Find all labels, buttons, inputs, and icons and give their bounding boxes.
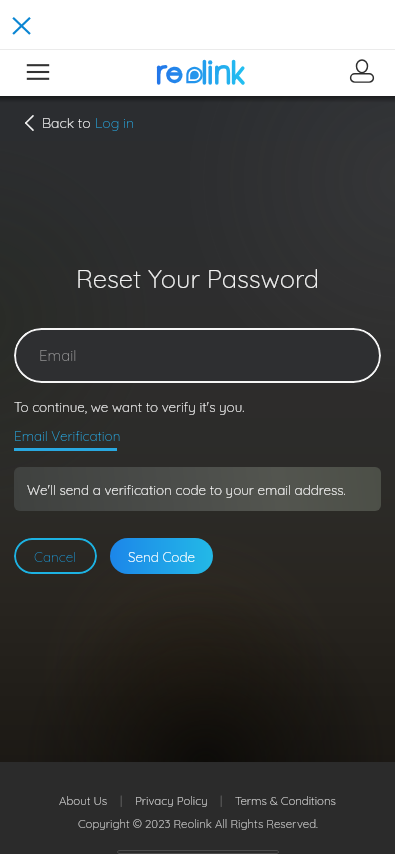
button[interactable]: About Us: [59, 793, 108, 807]
staticText: Send Code: [128, 548, 195, 565]
button[interactable]: Account: [344, 53, 380, 89]
button[interactable]: Terms & Conditions: [235, 793, 336, 807]
staticText: Email Verification: [14, 427, 121, 444]
staticText: Cancel: [34, 548, 77, 565]
staticText: We'll send a verification code to your e…: [27, 481, 346, 498]
staticText: Back to: [42, 114, 95, 132]
staticText: Log in: [95, 114, 135, 132]
button[interactable]: Email Verification: [14, 427, 121, 451]
button[interactable]: Language: [117, 850, 279, 854]
button[interactable]: Back to: [0, 107, 149, 136]
staticText: Email: [39, 346, 77, 365]
staticText: Privacy Policy: [135, 793, 208, 807]
button[interactable]: Cancel: [14, 538, 97, 574]
staticText: |: [220, 793, 223, 807]
staticText: To continue, we want to verify it's you.: [14, 398, 245, 415]
button[interactable]: Email: [14, 328, 381, 383]
staticText: Copyright © 2023 Reolink All Rights Rese…: [78, 816, 318, 830]
button[interactable]: Close: [8, 12, 35, 39]
staticText: About Us: [59, 793, 108, 807]
button[interactable]: Send Code: [110, 538, 213, 574]
staticText: Reset Your Password: [0, 262, 395, 294]
button[interactable]: Menu: [20, 54, 56, 90]
staticText: |: [120, 793, 123, 807]
staticText: Terms & Conditions: [235, 793, 336, 807]
button[interactable]: Privacy Policy: [135, 793, 208, 807]
